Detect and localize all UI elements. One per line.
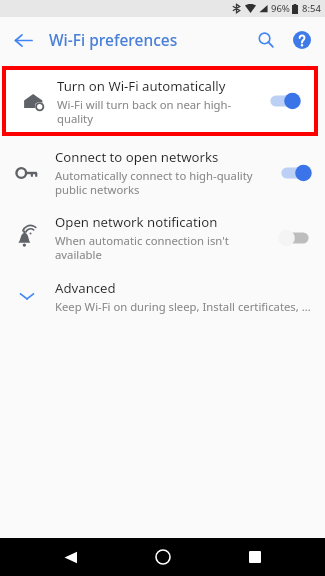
staticText: Automatically connect to high-quality pu… (55, 168, 253, 197)
staticText: Wi-Fi preferences (49, 29, 178, 50)
staticText: Connect to open networks (55, 148, 219, 166)
button[interactable]: Turn on Wi-Fi automatically (6, 70, 314, 132)
button[interactable]: Open network notification (0, 205, 325, 270)
button[interactable]: Off (273, 216, 317, 260)
button[interactable]: Back (47, 538, 93, 576)
staticText: When automatic connection isn't availabl… (55, 233, 229, 262)
button[interactable]: Connect to open networks (0, 140, 325, 205)
staticText: Open network notification (55, 213, 218, 231)
button[interactable]: Recents (232, 538, 278, 576)
staticText: Wi-Fi will turn back on near high-qualit… (57, 97, 258, 126)
button[interactable]: On (262, 79, 306, 123)
button[interactable]: Home (140, 538, 186, 576)
staticText: Turn on Wi-Fi automatically (57, 77, 226, 95)
button[interactable]: Search (249, 23, 283, 57)
staticText: 96% (271, 2, 290, 15)
button[interactable]: Advanced (0, 270, 325, 322)
staticText: Keep Wi-Fi on during sleep, Install cert… (55, 299, 315, 314)
staticText: 8:54 (302, 2, 321, 15)
button[interactable]: On (273, 151, 317, 195)
button[interactable]: Back (6, 23, 40, 57)
staticText: Advanced (55, 279, 116, 297)
button[interactable]: Help (285, 23, 319, 57)
